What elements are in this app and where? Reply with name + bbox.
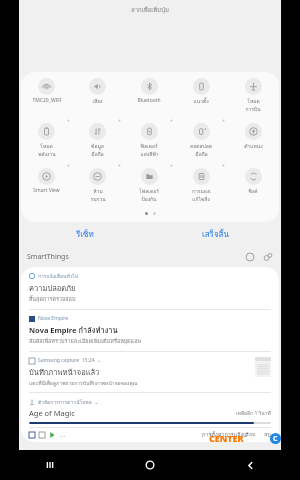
button[interactable]: TMC20_WIFI — [21, 78, 72, 118]
button[interactable]: ห้าม — [72, 168, 123, 208]
staticText: C — [273, 434, 278, 444]
staticText: ข้อมูล — [91, 142, 104, 150]
staticText: Samsung capture 15:24 ⌄ — [38, 357, 102, 364]
staticText: + — [170, 163, 173, 168]
staticText: สิ้นสุดการตรวจสอบ — [29, 295, 76, 304]
button[interactable]: ตัวจัดการการดาวน์โหลด ⌄ — [21, 393, 279, 427]
staticText: การตั้งค่าการแจ้งเตือน — [202, 431, 256, 440]
staticText: ลบ — [264, 431, 271, 440]
staticText: สัมผัสเพื่อทราบรายละเอียดเพิ่มเติมหรือหย… — [29, 337, 142, 346]
button[interactable]: เสียง — [72, 78, 123, 118]
staticText: โหมด — [247, 97, 260, 105]
staticText: SmartThings — [27, 252, 69, 262]
staticText: ฟิลเตอร์ — [140, 142, 158, 150]
staticText: พลังงาน — [38, 150, 56, 158]
staticText: บันทึกภาพหน้าจอแล้ว — [29, 366, 100, 378]
button[interactable]: Back — [200, 450, 300, 480]
staticText: ลากเพื่อเพิ่มปุ่ม — [131, 5, 170, 15]
staticText: การมองเ — [192, 187, 211, 195]
staticText: ซิงค์ — [248, 187, 258, 195]
button[interactable]: ฮอตสปอต — [175, 123, 227, 163]
staticText: + — [118, 163, 121, 168]
button[interactable]: Smart View — [21, 168, 72, 208]
staticText: ตำแหน่ง — [244, 142, 263, 150]
button[interactable]: Recents — [0, 450, 100, 480]
button[interactable]: การมองเ — [175, 168, 227, 208]
staticText: แนวตั้ง — [193, 97, 209, 105]
button[interactable]: Settings — [262, 251, 273, 262]
staticText: + — [222, 163, 225, 168]
button[interactable]: โหมด — [21, 123, 72, 163]
staticText: + — [222, 118, 225, 123]
staticText: แก้ไขสิ่ง — [192, 195, 210, 203]
button[interactable]: โฟลเดอร์ — [123, 168, 175, 208]
button[interactable]: App 3 — [49, 432, 55, 438]
staticText: มือถือ — [195, 150, 208, 158]
staticText: CENTER — [209, 432, 244, 444]
staticText: เสียง — [92, 97, 103, 105]
staticText: เหลืออีก 1 วินาที — [236, 409, 271, 417]
button[interactable]: SmartThings — [27, 246, 273, 267]
button[interactable]: App 1 — [29, 432, 35, 438]
staticText: โหมด — [40, 142, 53, 150]
button[interactable]: App 2 — [39, 432, 45, 438]
staticText: การบิน — [245, 105, 261, 113]
staticText: TMC20_WIFI — [32, 97, 62, 104]
staticText: Bluetooth — [137, 97, 161, 104]
staticText: + — [118, 118, 121, 123]
button[interactable]: การตั้งค่าการแจ้งเตือน — [202, 431, 256, 440]
staticText: + — [170, 118, 173, 123]
staticText: + — [67, 163, 70, 168]
staticText: ตัวจัดการการดาวน์โหลด ⌄ — [38, 398, 99, 406]
staticText: Age of Magic — [29, 408, 75, 418]
staticText: Nova Empire — [38, 315, 68, 322]
staticText: แสงสีฟ้า — [140, 150, 159, 158]
button[interactable]: Nova Empire — [21, 310, 279, 351]
staticText: ห้าม — [93, 187, 103, 195]
staticText: โฟลเดอร์ — [139, 187, 159, 195]
staticText: ฮอตสปอต — [190, 142, 212, 150]
staticText: THAIMOBILE — [150, 432, 209, 444]
button[interactable]: การแจ้งเตือนทั่วไป — [21, 267, 279, 309]
staticText: เสร็จสิ้น — [202, 228, 229, 241]
button[interactable]: แนวตั้ง — [175, 78, 227, 118]
staticText: + — [67, 118, 70, 123]
button[interactable]: Home — [100, 450, 200, 480]
button[interactable]: ซิงค์ — [227, 168, 279, 208]
staticText: Smart View — [33, 187, 60, 194]
button[interactable]: ตำแหน่ง — [227, 123, 279, 163]
staticText: Nova Empire กำลังทำงาน — [29, 324, 118, 336]
staticText: รีเซ็ท — [76, 228, 94, 241]
staticText: แตะที่นี่เพื่อดูภาพถ่ายการบันทึกภาพหน้าจ… — [29, 379, 138, 387]
button[interactable]: ลบ — [264, 431, 271, 440]
button[interactable]: ข้อมูล — [72, 123, 123, 163]
staticText: มือถือ — [91, 150, 104, 158]
staticText: ความปลอดภัย — [29, 282, 76, 294]
staticText: รบกวน — [90, 195, 106, 203]
staticText: .COM — [244, 432, 268, 444]
button[interactable]: เสร็จสิ้น — [150, 222, 281, 246]
button[interactable]: โหมด — [227, 78, 279, 118]
button[interactable]: Samsung capture 15:24 ⌄ — [21, 352, 279, 392]
button[interactable]: ฟิลเตอร์ — [123, 123, 175, 163]
staticText: ⋯ — [59, 432, 65, 439]
button[interactable]: Devices — [244, 251, 255, 262]
staticText: ป้องกัน — [141, 195, 157, 203]
button[interactable]: รีเซ็ท — [19, 222, 150, 246]
button[interactable]: Bluetooth — [123, 78, 175, 118]
staticText: การแจ้งเตือนทั่วไป — [38, 272, 79, 280]
